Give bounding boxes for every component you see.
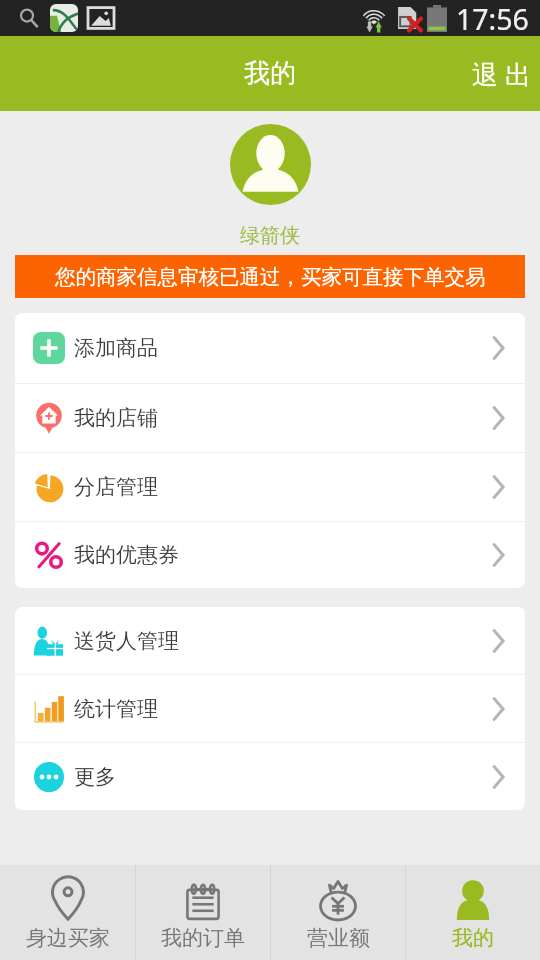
button[interactable]: 我的优惠券	[15, 522, 525, 588]
button[interactable]: 统计管理	[15, 675, 525, 742]
staticText: 身边买家	[26, 925, 110, 951]
button[interactable]: 送货人管理	[15, 607, 525, 674]
staticText: 送货人管理	[74, 628, 179, 654]
button[interactable]: Mine	[406, 865, 540, 960]
staticText: 17:56	[456, 0, 529, 36]
button[interactable]: My orders	[136, 865, 270, 960]
button[interactable]: 更多	[15, 743, 525, 810]
staticText: 我的	[452, 925, 494, 951]
button[interactable]: 添加商品	[15, 313, 525, 383]
staticText: 退 出	[472, 56, 531, 92]
button[interactable]: 我的店铺	[15, 384, 525, 452]
staticText: 统计管理	[74, 696, 158, 722]
staticText: 更多	[74, 764, 116, 790]
staticText: 我的订单	[161, 925, 245, 951]
staticText: 绿箭侠	[240, 223, 300, 248]
button[interactable]: 退 出	[450, 36, 540, 111]
staticText: 营业额	[307, 925, 370, 951]
staticText: 分店管理	[74, 474, 158, 500]
button[interactable]: Profile avatar	[230, 124, 311, 205]
staticText: 您的商家信息审核已通过，买家可直接下单交易	[55, 264, 486, 290]
staticText: 我的	[244, 57, 296, 90]
button[interactable]: 您的商家信息审核已通过，买家可直接下单交易	[15, 255, 525, 298]
staticText: 添加商品	[74, 335, 158, 361]
staticText: 我的优惠券	[74, 542, 179, 568]
button[interactable]: 分店管理	[15, 453, 525, 521]
button[interactable]: Revenue	[271, 865, 405, 960]
button[interactable]: Nearby buyers	[0, 865, 135, 960]
staticText: 我的店铺	[74, 405, 158, 431]
